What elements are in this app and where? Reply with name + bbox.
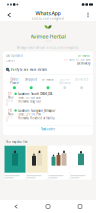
staticText: Time: 21:10 PM [18, 113, 40, 116]
staticText: Shipped [25, 78, 37, 81]
button[interactable] [70, 146, 91, 180]
button[interactable]: More options [83, 9, 93, 21]
staticText: Last Updated [6, 54, 23, 57]
button[interactable]: Home [32, 200, 64, 213]
staticText: Delhivery [77, 62, 90, 65]
staticText: 11 Nov, 07:48 AM [64, 58, 90, 61]
staticText: Placed [10, 81, 19, 85]
button[interactable]: Verify to see more details [6, 68, 90, 71]
button[interactable] [4, 146, 25, 180]
button[interactable]: Back [3, 9, 15, 21]
staticText: 21:10 [6, 116, 13, 123]
staticText: Track order [41, 127, 55, 131]
staticText: 07:48 [6, 99, 13, 106]
staticText: Location: Gurgaon_Bilaspur [18, 109, 55, 112]
staticText: Carrier [6, 59, 15, 62]
staticText: Avimee Herbal [30, 33, 65, 40]
button[interactable] [48, 146, 69, 180]
staticText: Verify to see more details [11, 68, 47, 71]
staticText: 10 Nov [8, 109, 13, 116]
button[interactable]: Back [0, 200, 32, 213]
staticText: WhatsApp [35, 9, 60, 17]
staticText: Messages and calls are end-to-end encryp… [16, 46, 79, 49]
staticText: Time: 07:48 AM [18, 96, 40, 99]
staticText: In Transit [78, 54, 90, 57]
staticText: end-to-end encrypted [32, 17, 64, 20]
button[interactable] [26, 146, 47, 180]
staticText: Remarks: Reached at facility [18, 116, 54, 120]
staticText: Delivery [59, 81, 70, 85]
staticText: Remarks: Bag Out [18, 100, 41, 103]
staticText: Order [10, 78, 18, 81]
button[interactable]: Track order [6, 126, 90, 133]
staticText: Out For [60, 78, 70, 81]
staticText: In Transit [42, 78, 54, 81]
button[interactable]: Recent apps [64, 200, 96, 213]
staticText: Delivered [75, 78, 89, 81]
staticText: 11 Nov [8, 92, 13, 99]
staticText: Location: South DELHI_DEL [18, 92, 52, 96]
staticText: You may also like [6, 140, 28, 144]
